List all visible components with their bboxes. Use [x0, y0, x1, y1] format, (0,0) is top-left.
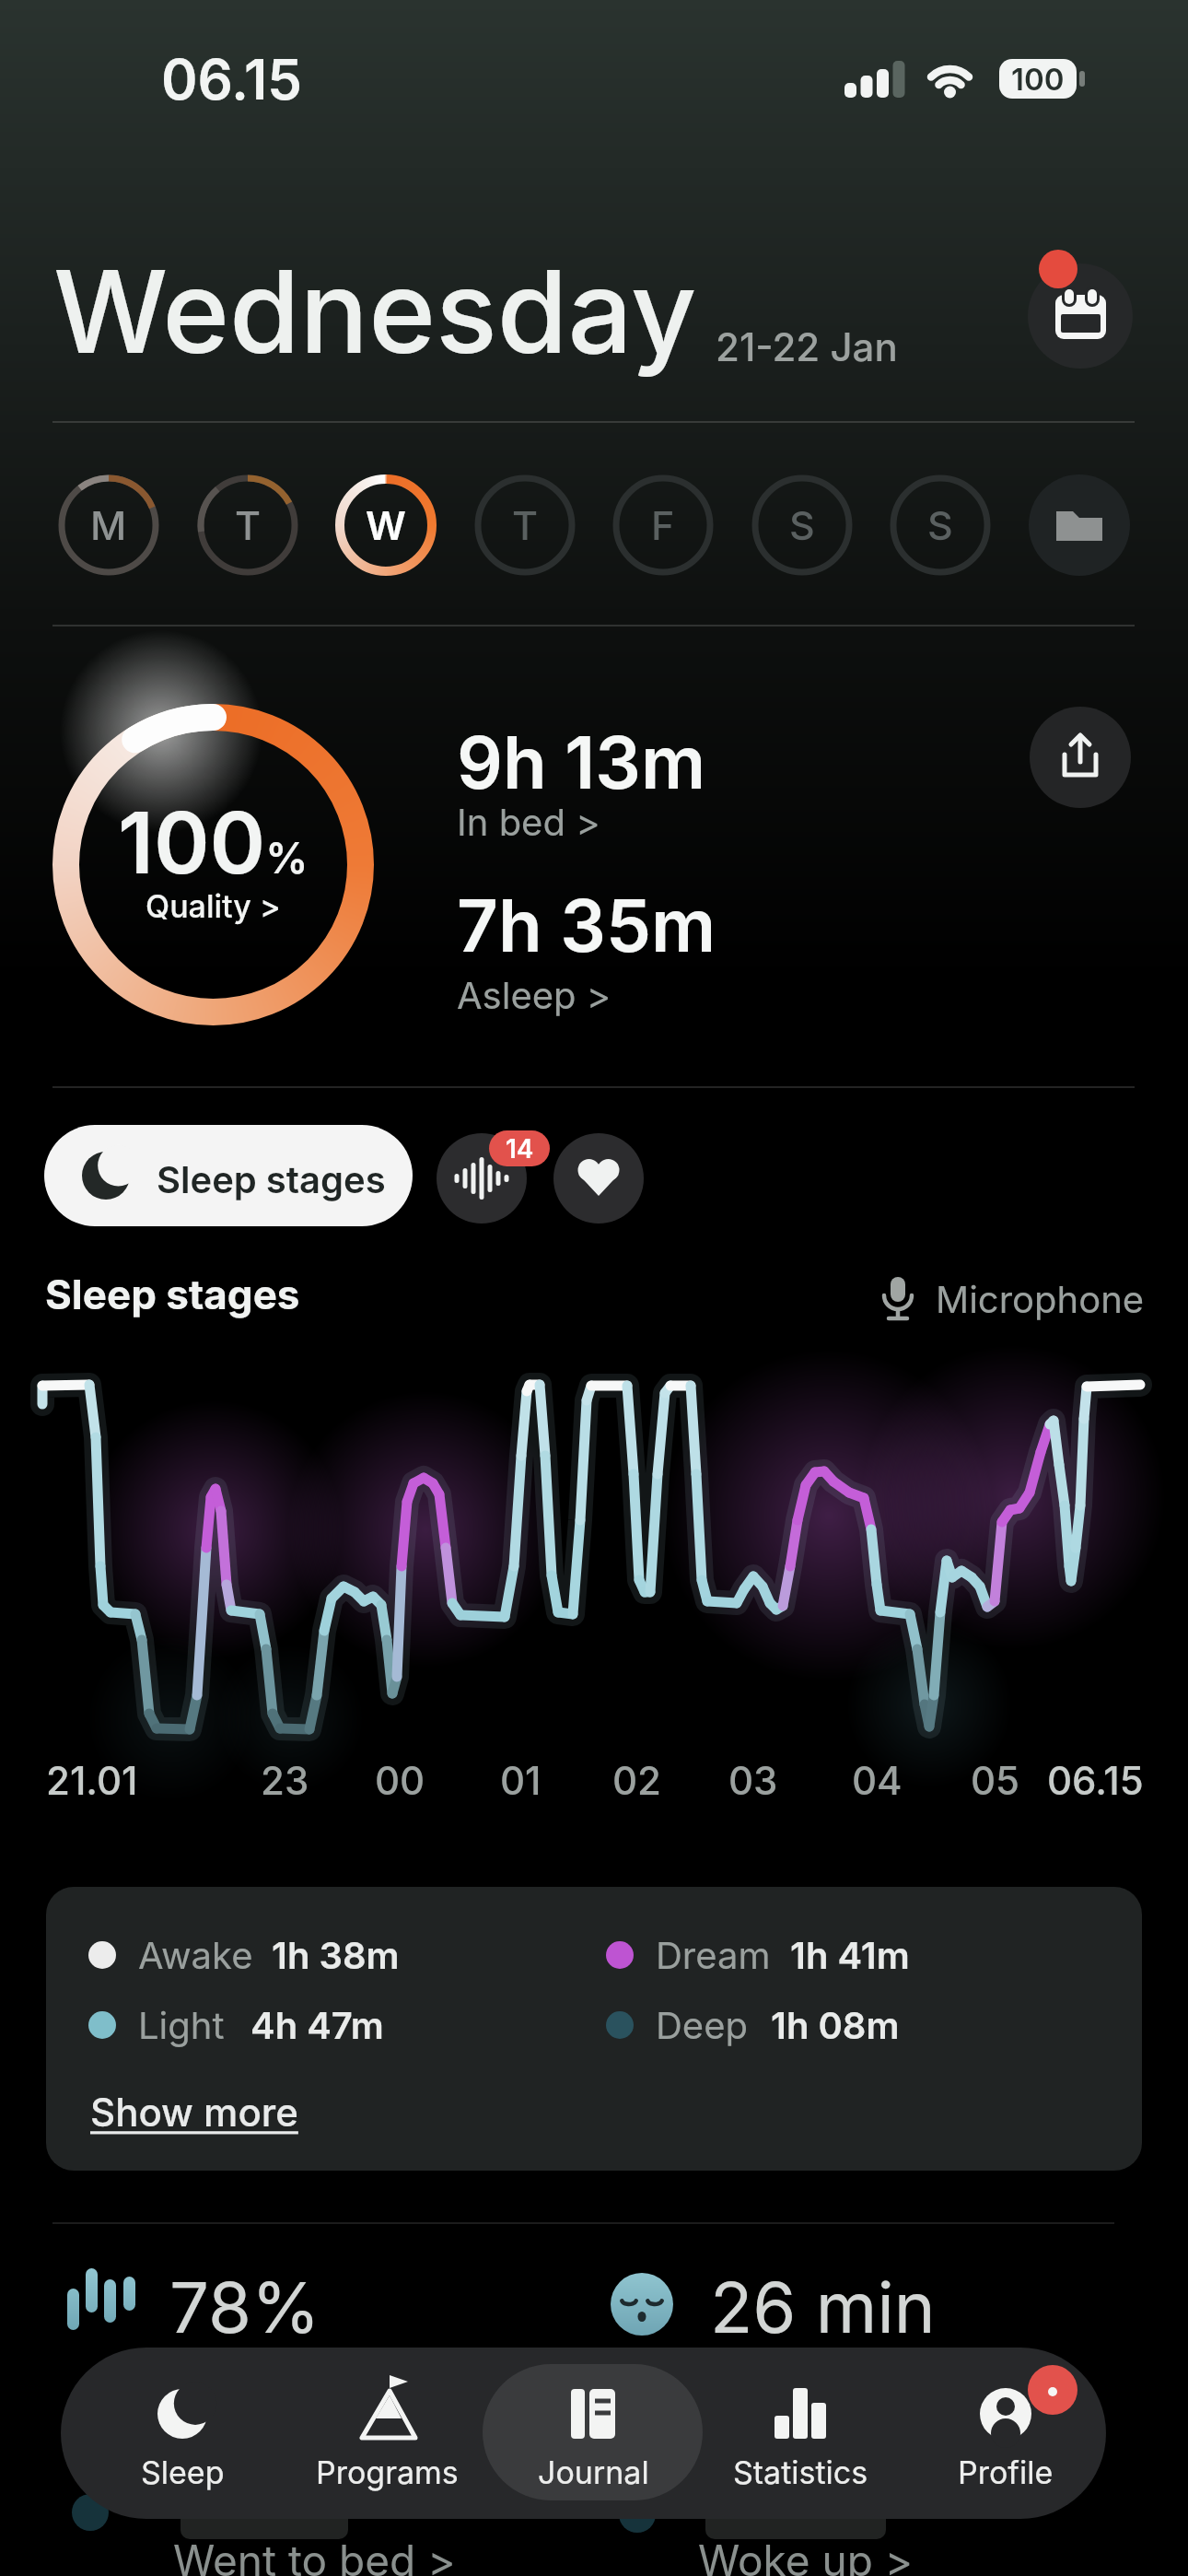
staticText: Asleep > — [457, 973, 611, 1017]
button[interactable] — [437, 1133, 527, 1224]
staticText: Went to bed > — [173, 2535, 456, 2576]
staticText: W — [366, 501, 406, 549]
staticText: Profile — [958, 2453, 1054, 2491]
staticText: 01 — [500, 1757, 542, 1804]
button[interactable]: S — [890, 474, 991, 576]
staticText: S — [927, 501, 953, 549]
button[interactable]: S — [751, 474, 853, 576]
button[interactable]: T — [474, 474, 576, 576]
button[interactable]: 9h 13m — [451, 709, 764, 838]
staticText: 4h 47m — [250, 2003, 384, 2047]
staticText: 05 — [971, 1757, 1020, 1804]
button[interactable]: Journal — [519, 2348, 667, 2519]
staticText: T — [512, 501, 539, 549]
button[interactable] — [553, 1133, 644, 1224]
button[interactable]: F — [612, 474, 714, 576]
button[interactable]: T — [197, 474, 298, 576]
staticText: T — [235, 501, 262, 549]
staticText: 1h 41m — [790, 1933, 910, 1977]
staticText: Programs — [316, 2453, 459, 2491]
staticText: Show more — [90, 2089, 298, 2136]
staticText: Quality > — [146, 887, 281, 925]
staticText: Dream — [656, 1933, 771, 1977]
staticText: 100% — [118, 791, 309, 894]
staticText: 03 — [728, 1757, 778, 1804]
staticText: 06.15 — [1047, 1757, 1144, 1804]
staticText: S — [789, 501, 815, 549]
staticText: 1h 08m — [771, 2003, 900, 2047]
staticText: Wednesday — [53, 242, 697, 381]
button[interactable]: Microphone — [875, 1271, 1151, 1327]
staticText: Journal — [538, 2453, 649, 2491]
staticText: 9h 13m — [457, 719, 706, 805]
staticText: 23 — [261, 1757, 309, 1804]
button[interactable]: Show more — [83, 2080, 313, 2145]
staticText: F — [651, 501, 675, 549]
staticText: In bed > — [457, 800, 600, 844]
staticText: 7h 35m — [457, 882, 716, 968]
button[interactable]: 100% — [52, 704, 374, 1025]
button[interactable]: Statistics — [727, 2348, 874, 2519]
staticText: 14 — [506, 1133, 534, 1165]
button[interactable] — [1030, 707, 1131, 808]
staticText: 21-22 Jan — [716, 323, 898, 370]
staticText: 26 min — [710, 2265, 936, 2349]
button[interactable]: M — [58, 474, 159, 576]
staticText: Statistics — [733, 2453, 868, 2491]
staticText: Microphone — [936, 1277, 1145, 1321]
button[interactable]: W — [335, 474, 437, 576]
staticText: Sleep stages — [157, 1157, 386, 1201]
staticText: Light — [138, 2003, 225, 2047]
button[interactable]: Profile — [932, 2348, 1079, 2519]
button[interactable] — [1028, 263, 1133, 369]
staticText: Sleep — [141, 2453, 225, 2491]
staticText: M — [90, 501, 127, 549]
staticText: 100 — [1011, 61, 1065, 98]
staticText: 21.01 — [46, 1757, 138, 1804]
staticText: Awake — [138, 1933, 253, 1977]
staticText: Woke up > — [698, 2535, 914, 2576]
button[interactable]: Sleep stages — [44, 1125, 413, 1226]
staticText: 02 — [612, 1757, 661, 1804]
staticText: 78% — [169, 2265, 320, 2349]
staticText: Sleep stages — [45, 1270, 300, 1318]
button[interactable]: Programs — [313, 2348, 460, 2519]
staticText: 04 — [852, 1757, 903, 1804]
staticText: 06.15 — [161, 46, 302, 113]
staticText: 1h 38m — [272, 1933, 400, 1977]
button[interactable] — [1029, 474, 1130, 576]
button[interactable]: 7h 35m — [451, 871, 764, 1000]
staticText: 00 — [375, 1757, 425, 1804]
button[interactable]: Sleep — [109, 2348, 256, 2519]
staticText: Deep — [656, 2003, 748, 2047]
